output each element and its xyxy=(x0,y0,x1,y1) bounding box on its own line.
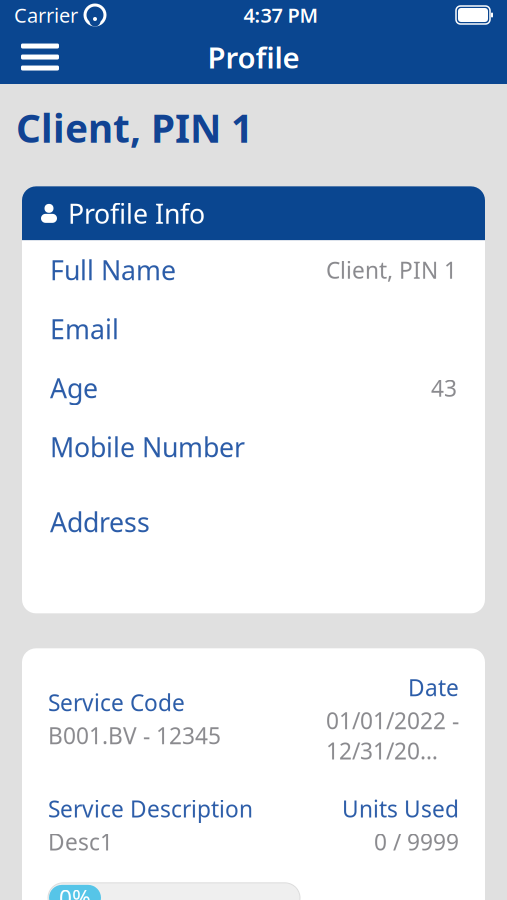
staticText: Profile xyxy=(207,37,299,76)
staticText: Profile Info xyxy=(68,196,205,231)
staticText: 4:37 PM xyxy=(243,2,318,28)
staticText: Service Description xyxy=(48,794,253,824)
staticText: Service Code xyxy=(48,687,185,717)
staticText: B001.BV - 12345 xyxy=(48,720,221,751)
staticText: 01/01/2022 - 12/31/20… xyxy=(326,705,459,766)
staticText: 0% xyxy=(59,883,91,900)
staticText: Full Name xyxy=(50,252,176,287)
staticText: Units Used xyxy=(342,794,459,824)
staticText: 0 / 9999 xyxy=(374,827,459,857)
staticText: Carrier xyxy=(14,2,78,28)
staticText: Email xyxy=(50,311,119,346)
staticText: Desc1 xyxy=(48,827,113,857)
button[interactable]: Menu xyxy=(10,34,70,80)
staticText: Age xyxy=(50,370,98,405)
staticText: Mobile Number xyxy=(50,429,245,464)
staticText: Client, PIN 1 xyxy=(16,102,253,153)
staticText: Address xyxy=(50,504,150,539)
staticText: Date xyxy=(408,672,459,702)
staticText: Client, PIN 1 xyxy=(326,255,457,285)
staticText: 43 xyxy=(431,373,457,403)
